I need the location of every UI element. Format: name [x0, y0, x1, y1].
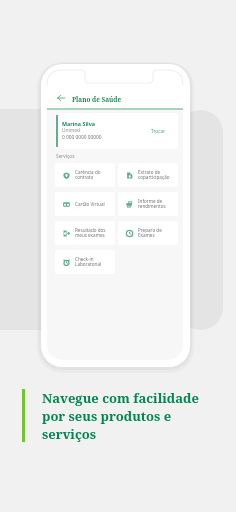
button[interactable]: Resultado dos meus exames: [55, 221, 115, 245]
staticText: Cartão Virtual: [75, 201, 105, 207]
button[interactable]: Marina Silva: [55, 113, 178, 149]
staticText: Plano de Saúde: [72, 95, 122, 104]
staticText: Unimed: [62, 127, 80, 134]
staticText: Serviços: [56, 153, 75, 160]
staticText: Trocar: [151, 128, 166, 135]
button[interactable]: Informe de rendimentos: [118, 192, 178, 216]
staticText: Check-in Laboratorial: [75, 256, 102, 268]
staticText: Preparo de Exames: [138, 227, 162, 239]
button[interactable]: Check-in Laboratorial: [55, 250, 115, 274]
staticText: Navegue com facilidade por seus produtos…: [42, 389, 205, 443]
staticText: Marina Silva: [62, 120, 95, 127]
staticText: Extrato de coparticipação: [138, 169, 170, 181]
button[interactable]: Preparo de Exames: [118, 221, 178, 245]
button[interactable]: Carência do contrato: [55, 163, 115, 187]
button[interactable]: Voltar: [57, 94, 65, 102]
staticText: Carência do contrato: [75, 169, 101, 181]
button[interactable]: Extrato de coparticipação: [118, 163, 178, 187]
staticText: 0 000 0000 00000: [62, 134, 102, 141]
staticText: Resultado dos meus exames: [75, 227, 106, 239]
button[interactable]: Cartão Virtual: [55, 192, 115, 216]
staticText: Informe de rendimentos: [138, 198, 166, 210]
